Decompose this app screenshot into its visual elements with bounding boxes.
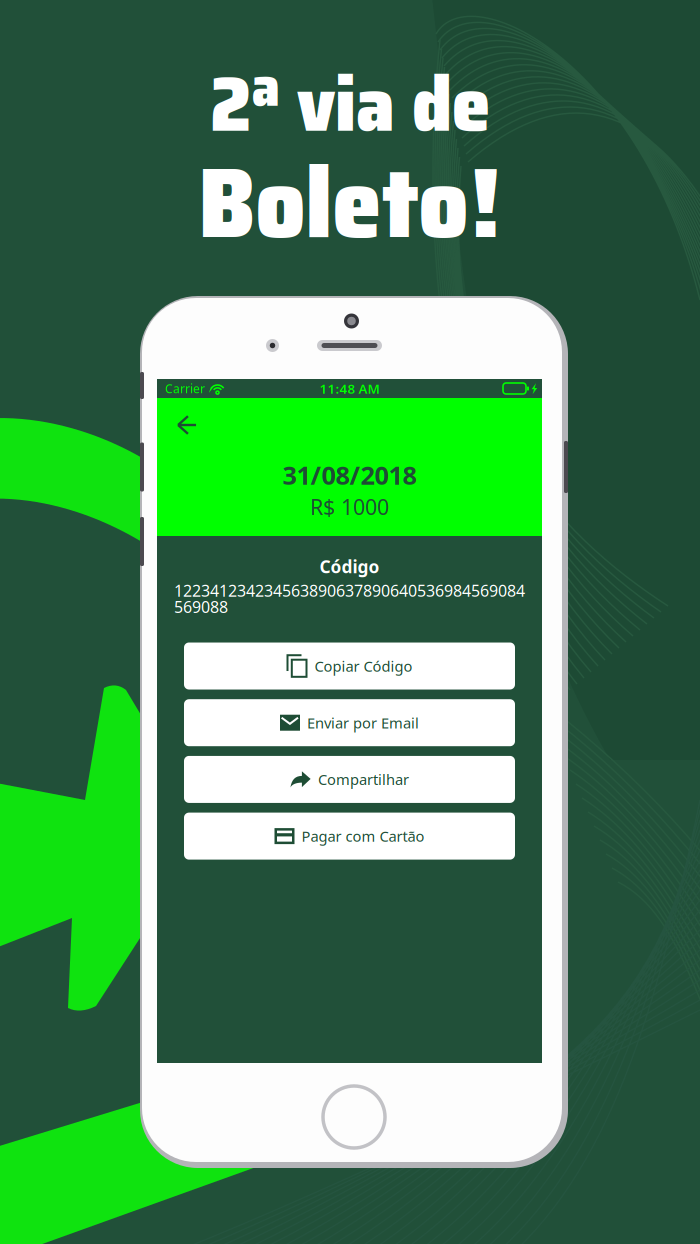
- staticText: 2ª via de: [210, 43, 490, 165]
- staticText: Pagar com Cartão: [301, 826, 424, 846]
- staticText: 569088: [174, 596, 228, 617]
- button[interactable]: Back: [166, 408, 208, 442]
- button[interactable]: Copiar Código: [184, 642, 515, 689]
- button[interactable]: Compartilhar: [184, 756, 515, 803]
- staticText: 31/08/2018: [282, 458, 416, 492]
- staticText: R$ 1000: [310, 493, 389, 521]
- staticText: 11:48 AM: [319, 380, 379, 397]
- staticText: Código: [319, 555, 379, 578]
- staticText: Carrier: [165, 380, 205, 396]
- staticText: Enviar por Email: [307, 713, 419, 732]
- button[interactable]: Pagar com Cartão: [184, 813, 515, 860]
- button[interactable]: Enviar por Email: [184, 699, 515, 746]
- staticText: 122341234234563890637890640536984569084: [174, 580, 525, 601]
- staticText: Copiar Código: [314, 656, 412, 676]
- staticText: Boleto!: [198, 125, 501, 280]
- staticText: Compartilhar: [318, 770, 409, 789]
